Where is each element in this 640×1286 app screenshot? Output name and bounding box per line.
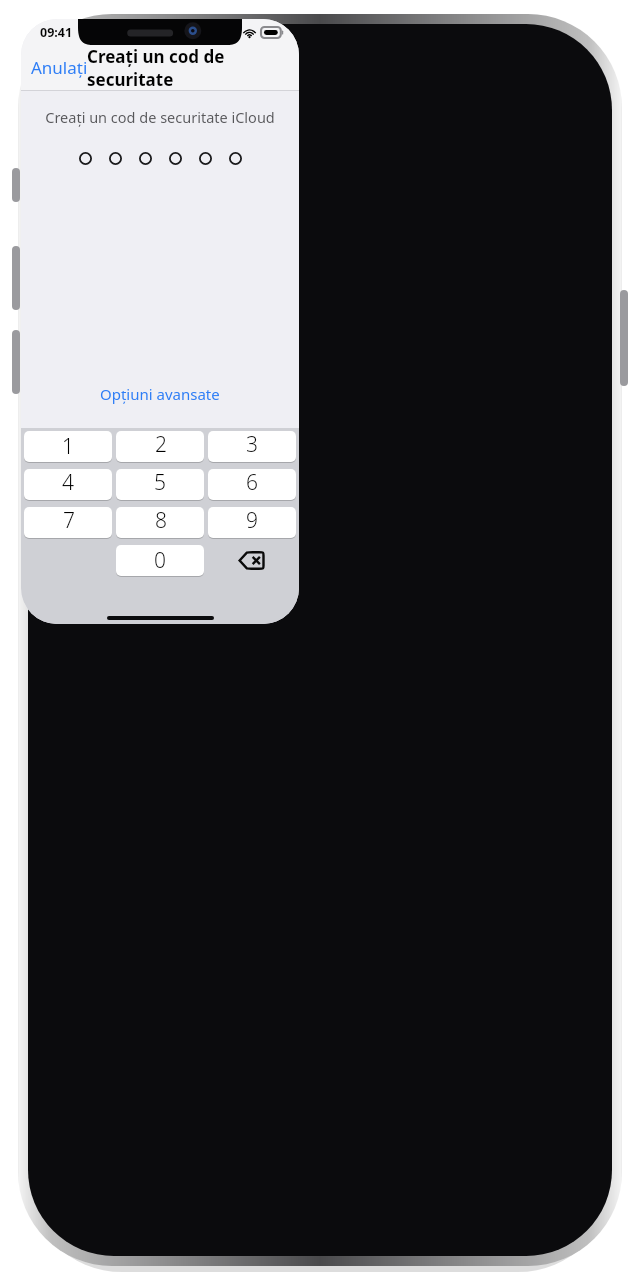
button[interactable]: 2	[116, 431, 204, 462]
staticText: Opțiuni avansate	[100, 384, 220, 404]
button[interactable]: 8	[116, 507, 204, 538]
staticText: Creați un cod de securitate iCloud	[45, 107, 275, 127]
staticText: 7	[63, 507, 75, 535]
staticText: 09:41	[40, 24, 73, 41]
staticText: 0	[154, 546, 166, 575]
button[interactable]: 5	[116, 469, 204, 500]
button[interactable]: 4	[24, 469, 112, 500]
button[interactable]: 9	[208, 507, 296, 538]
staticText: 6	[246, 469, 258, 497]
staticText: 1	[62, 432, 74, 461]
staticText: 4	[62, 469, 74, 497]
button[interactable]: 3	[208, 431, 296, 462]
button[interactable]: Delete	[208, 545, 296, 576]
staticText: Anulați	[31, 56, 88, 79]
button[interactable]: Opțiuni avansate	[88, 378, 232, 410]
staticText: 3	[246, 431, 258, 459]
button[interactable]: 1	[24, 431, 112, 462]
button[interactable]: 0	[116, 545, 204, 576]
button[interactable]: 7	[24, 507, 112, 538]
button[interactable]: Anulați	[21, 50, 98, 85]
staticText: 2	[155, 431, 167, 459]
staticText: 9	[246, 507, 258, 535]
staticText: 8	[155, 507, 167, 535]
staticText: 5	[154, 469, 166, 497]
staticText: Creați un cod de securitate	[87, 45, 299, 90]
button[interactable]: 6	[208, 469, 296, 500]
